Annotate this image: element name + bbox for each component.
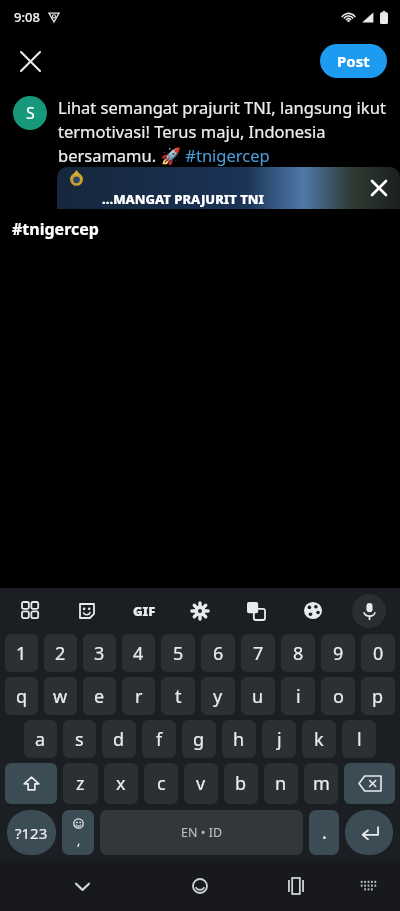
button[interactable]: 1 bbox=[5, 634, 38, 672]
staticText: o bbox=[333, 684, 344, 709]
staticText: c bbox=[157, 771, 166, 796]
staticText: a bbox=[35, 727, 46, 752]
staticText: Lihat semangat prajurit TNI, langsung ik… bbox=[58, 96, 386, 167]
button[interactable]: Recent apps bbox=[276, 866, 316, 906]
staticText: …MANGAT PRAJURIT TNI bbox=[102, 190, 264, 208]
staticText: f bbox=[156, 727, 163, 752]
staticText: x bbox=[116, 771, 126, 796]
staticText: 6 bbox=[213, 641, 224, 666]
button[interactable]: Remove media bbox=[364, 173, 394, 203]
button[interactable]: n bbox=[264, 763, 298, 804]
staticText: 2 bbox=[55, 641, 66, 666]
button[interactable]: 7 bbox=[241, 634, 275, 672]
button[interactable]: Translate bbox=[239, 594, 273, 628]
button[interactable]: Settings bbox=[183, 594, 217, 628]
button[interactable]: d bbox=[102, 720, 136, 758]
button[interactable]: e bbox=[83, 677, 116, 715]
staticText: ?123 bbox=[15, 823, 48, 843]
button[interactable]: ?123 bbox=[7, 810, 56, 855]
button[interactable]: o bbox=[321, 677, 355, 715]
staticText: , bbox=[77, 832, 81, 848]
button[interactable]: m bbox=[304, 763, 338, 804]
staticText: z bbox=[76, 771, 85, 796]
staticText: j bbox=[277, 727, 282, 752]
button[interactable]: 3 bbox=[83, 634, 116, 672]
button[interactable]: 4 bbox=[122, 634, 155, 672]
staticText: d bbox=[113, 727, 125, 752]
button[interactable]: b bbox=[224, 763, 258, 804]
button[interactable]: Emoji and comma bbox=[62, 810, 94, 855]
button[interactable]: w bbox=[44, 677, 77, 715]
button[interactable]: S bbox=[13, 96, 47, 130]
button[interactable]: a bbox=[24, 720, 57, 758]
staticText: u bbox=[252, 684, 264, 709]
button[interactable]: v bbox=[184, 763, 218, 804]
button[interactable]: z bbox=[63, 763, 98, 804]
staticText: m bbox=[313, 771, 330, 796]
button[interactable]: Stickers bbox=[70, 594, 104, 628]
staticText: e bbox=[94, 684, 105, 709]
staticText: l bbox=[357, 727, 362, 752]
button[interactable]: Hide keyboard bbox=[62, 866, 102, 906]
button[interactable]: s bbox=[63, 720, 96, 758]
staticText: r bbox=[135, 684, 143, 709]
button[interactable]: Home bbox=[180, 866, 220, 906]
staticText: p bbox=[372, 684, 384, 709]
button[interactable]: c bbox=[144, 763, 178, 804]
button[interactable]: f bbox=[142, 720, 176, 758]
staticText: 5 bbox=[173, 641, 184, 666]
button[interactable]: 6 bbox=[201, 634, 235, 672]
button[interactable]: 5 bbox=[161, 634, 195, 672]
button[interactable]: k bbox=[302, 720, 336, 758]
button[interactable]: j bbox=[262, 720, 296, 758]
button[interactable]: u bbox=[241, 677, 275, 715]
button[interactable]: 0 bbox=[361, 634, 395, 672]
staticText: y bbox=[213, 684, 223, 709]
button[interactable]: p bbox=[361, 677, 395, 715]
staticText: t bbox=[175, 684, 182, 709]
staticText: 7 bbox=[253, 641, 264, 666]
staticText: q bbox=[16, 684, 28, 709]
staticText: 8 bbox=[293, 641, 304, 666]
button[interactable]: x bbox=[104, 763, 138, 804]
button[interactable]: l bbox=[342, 720, 376, 758]
button[interactable]: GIF bbox=[127, 594, 161, 628]
button[interactable]: y bbox=[201, 677, 235, 715]
staticText: s bbox=[75, 727, 84, 752]
staticText: v bbox=[196, 771, 206, 796]
button[interactable]: Close bbox=[8, 39, 52, 83]
staticText: h bbox=[233, 727, 245, 752]
button[interactable]: q bbox=[5, 677, 38, 715]
button[interactable]: h bbox=[222, 720, 256, 758]
button[interactable]: Switch keyboard bbox=[350, 868, 386, 904]
button[interactable]: Backspace bbox=[344, 763, 395, 804]
staticText: 9:08 bbox=[14, 8, 40, 26]
staticText: GIF bbox=[133, 602, 156, 620]
staticText: 1 bbox=[16, 641, 27, 666]
staticText: 4 bbox=[133, 641, 144, 666]
button[interactable]: Shift bbox=[5, 763, 57, 804]
staticText: EN • ID bbox=[181, 824, 223, 841]
button[interactable]: . bbox=[309, 810, 339, 855]
button[interactable]: 9 bbox=[321, 634, 355, 672]
staticText: k bbox=[314, 727, 324, 752]
button[interactable]: 2 bbox=[44, 634, 77, 672]
staticText: 3 bbox=[94, 641, 105, 666]
button[interactable]: #tnigercep bbox=[12, 218, 99, 240]
button[interactable]: Voice input bbox=[352, 594, 386, 628]
button[interactable]: Themes bbox=[296, 594, 330, 628]
button[interactable]: t bbox=[161, 677, 195, 715]
button[interactable]: Apps bbox=[14, 594, 48, 628]
staticText: n bbox=[275, 771, 287, 796]
staticText: i bbox=[296, 684, 301, 709]
staticText: 9 bbox=[333, 641, 344, 666]
staticText: S bbox=[26, 102, 35, 124]
button[interactable]: r bbox=[122, 677, 155, 715]
button[interactable]: i bbox=[281, 677, 315, 715]
button[interactable]: Post bbox=[320, 44, 387, 78]
staticText: g bbox=[193, 727, 205, 752]
button[interactable]: Enter bbox=[345, 810, 393, 855]
button[interactable]: EN • ID bbox=[100, 810, 303, 855]
button[interactable]: g bbox=[182, 720, 216, 758]
button[interactable]: 8 bbox=[281, 634, 315, 672]
